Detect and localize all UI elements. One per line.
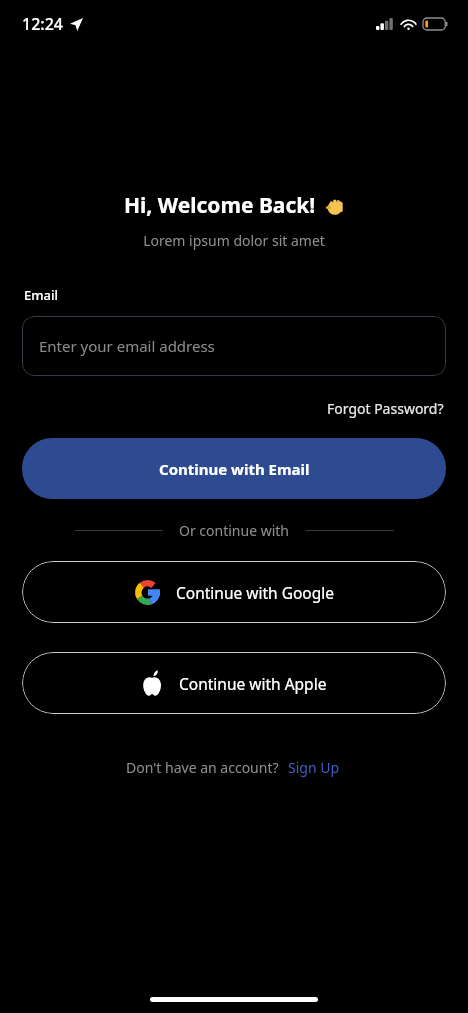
staticText: Continue with Email xyxy=(159,459,310,479)
staticText: Enter your email address xyxy=(39,336,215,356)
staticText: Lorem ipsum dolor sit amet xyxy=(0,231,468,250)
staticText: Continue with Google xyxy=(176,582,334,603)
staticText: Don't have an account? xyxy=(126,758,279,777)
button[interactable]: Continue with Apple xyxy=(22,652,446,714)
button[interactable]: Continue with Email xyxy=(22,438,446,499)
button[interactable]: Sign Up xyxy=(286,755,342,780)
staticText: Email xyxy=(24,286,59,304)
button[interactable]: Forgot Password? xyxy=(325,396,446,421)
staticText: 12:24 xyxy=(22,13,63,35)
button[interactable]: Enter your email address xyxy=(22,316,446,376)
button[interactable]: Continue with Google xyxy=(22,561,446,623)
staticText: Continue with Apple xyxy=(179,673,327,694)
staticText: Sign Up xyxy=(288,758,340,777)
staticText: Or continue with xyxy=(179,521,290,540)
staticText: Hi, Welcome Back! xyxy=(124,191,316,220)
staticText: Forgot Password? xyxy=(327,399,444,418)
